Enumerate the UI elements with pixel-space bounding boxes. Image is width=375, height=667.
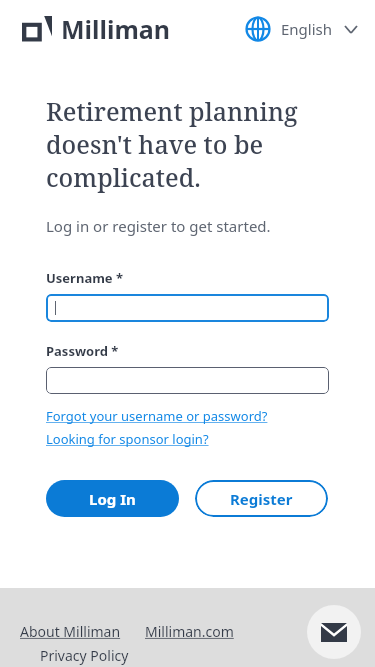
staticText: About Milliman <box>20 622 121 641</box>
staticText: Log In <box>89 489 136 509</box>
button[interactable]: Log In <box>46 480 179 517</box>
staticText: Looking for sponsor login? <box>46 430 209 448</box>
staticText: Log in or register to get started. <box>46 216 271 236</box>
staticText: Register <box>230 489 293 509</box>
button[interactable]: Milliman.com <box>145 622 234 641</box>
button[interactable] <box>46 294 329 322</box>
button[interactable]: About Milliman <box>20 622 121 641</box>
staticText: Username * <box>46 269 124 287</box>
button[interactable] <box>46 367 329 394</box>
other: Language <box>245 16 271 42</box>
staticText: English <box>281 19 333 39</box>
button[interactable]: Privacy Policy <box>40 646 129 665</box>
button[interactable]: Contact us <box>307 605 361 659</box>
staticText: Privacy Policy <box>40 646 129 665</box>
button[interactable]: Forgot your username or password? <box>46 407 268 425</box>
staticText: Forgot your username or password? <box>46 407 268 425</box>
button[interactable]: Looking for sponsor login? <box>46 430 209 448</box>
button[interactable]: Language <box>241 12 361 46</box>
staticText: Password * <box>46 342 119 360</box>
staticText: Milliman <box>61 12 171 46</box>
staticText: Retirement planning doesn't have to be c… <box>46 94 298 194</box>
button[interactable]: Register <box>195 480 328 517</box>
staticText: Milliman.com <box>145 622 234 641</box>
